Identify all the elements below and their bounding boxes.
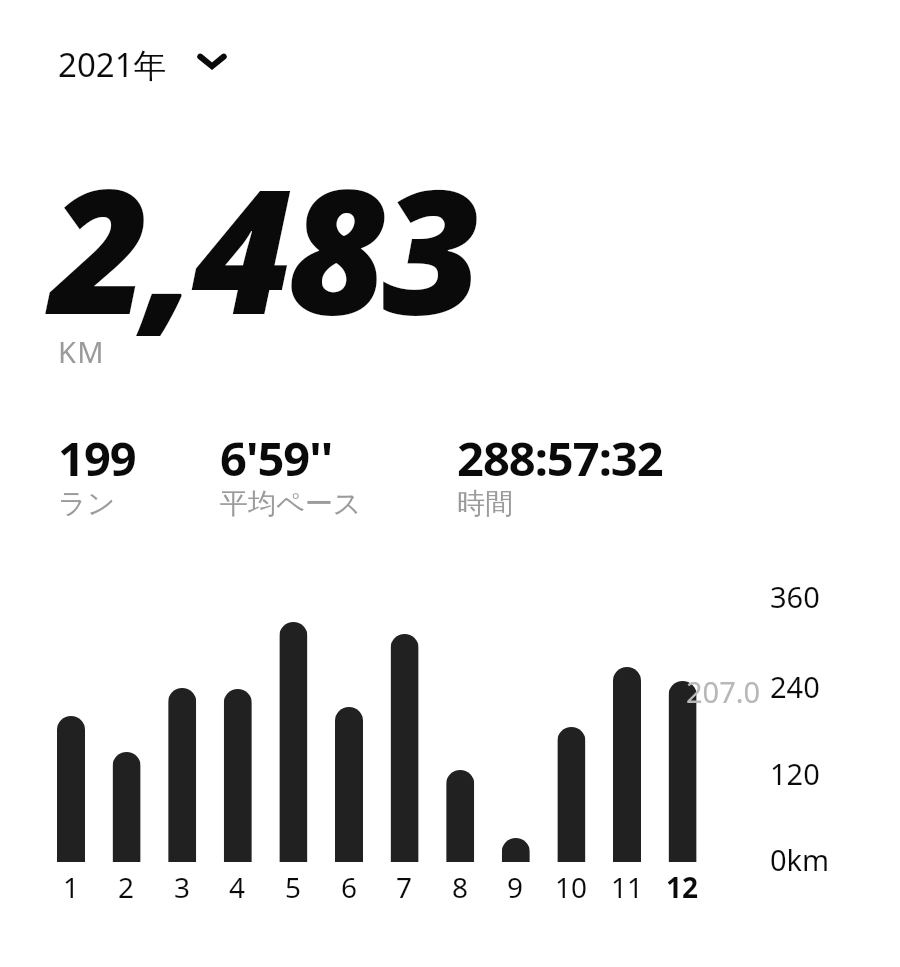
staticText: 3 bbox=[152, 868, 212, 906]
staticText: 6'59'' bbox=[220, 426, 333, 490]
button[interactable]: 2021年 bbox=[46, 26, 246, 98]
staticText: 5 bbox=[263, 868, 323, 906]
staticText: ラン bbox=[58, 486, 116, 521]
button[interactable]: Monthly distance chart bbox=[0, 600, 760, 870]
button[interactable]: 6'59'' bbox=[212, 418, 444, 530]
staticText: 2021年 bbox=[58, 42, 167, 87]
staticText: KM bbox=[58, 332, 105, 371]
staticText: 288:57:32 bbox=[457, 426, 663, 490]
staticText: 1 bbox=[41, 868, 101, 906]
button[interactable]: 199 bbox=[50, 418, 202, 530]
staticText: 120 bbox=[770, 754, 820, 793]
staticText: 240 bbox=[770, 667, 820, 706]
staticText: 10 bbox=[541, 868, 601, 906]
staticText: 11 bbox=[597, 868, 657, 906]
staticText: 2 bbox=[96, 868, 156, 906]
button[interactable]: 288:57:32 bbox=[449, 418, 701, 530]
staticText: 平均ペース bbox=[220, 486, 362, 521]
staticText: 4 bbox=[207, 868, 267, 906]
staticText: 0km bbox=[770, 840, 830, 879]
staticText: 8 bbox=[430, 868, 490, 906]
staticText: 時間 bbox=[457, 486, 513, 521]
staticText: 7 bbox=[374, 868, 434, 906]
staticText: 6 bbox=[319, 868, 379, 906]
staticText: 9 bbox=[485, 868, 545, 906]
staticText: 199 bbox=[58, 426, 136, 490]
staticText: 12 bbox=[652, 868, 712, 906]
staticText: 2,483 bbox=[50, 130, 477, 364]
staticText: 360 bbox=[770, 577, 820, 616]
staticText: 207.0 bbox=[686, 672, 761, 711]
other: Change year bbox=[198, 51, 226, 71]
